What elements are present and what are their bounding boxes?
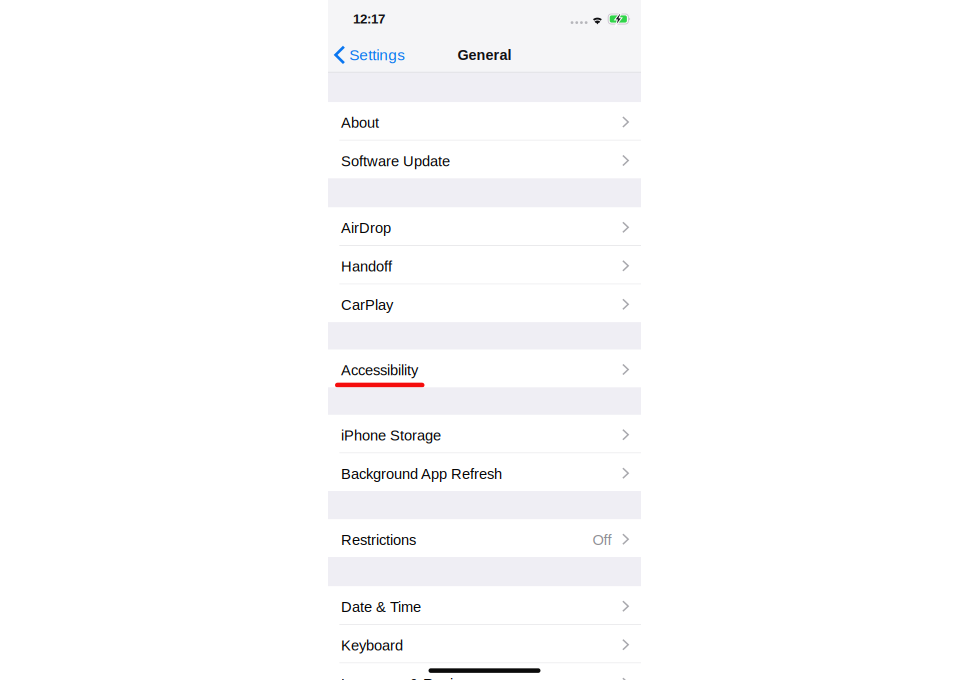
button[interactable]: About [328,102,641,140]
staticText: Language & Region [341,676,469,680]
button[interactable]: Keyboard [328,625,641,662]
button[interactable]: CarPlay [328,284,641,322]
button[interactable]: Handoff [328,246,641,284]
staticText: General [457,47,511,63]
button[interactable]: Language & Region [328,663,641,680]
staticText: Restrictions [341,532,416,548]
button[interactable]: Accessibility [328,350,641,387]
staticText: CarPlay [341,297,393,313]
button[interactable]: iPhone Storage [328,415,641,452]
staticText: Off [593,532,612,548]
button[interactable]: Settings [328,38,413,72]
staticText: Accessibility [341,362,418,378]
button[interactable]: Background App Refresh [328,453,641,491]
button[interactable]: Restrictions [328,519,641,557]
staticText: 12:17 [353,12,385,26]
button[interactable]: Date & Time [328,586,641,624]
button[interactable]: AirDrop [328,207,641,245]
staticText: Software Update [341,153,450,169]
staticText: AirDrop [341,220,391,236]
button[interactable]: Software Update [328,141,641,178]
staticText: Date & Time [341,599,421,615]
staticText: Settings [349,46,405,63]
staticText: Handoff [341,258,392,275]
staticText: Background App Refresh [341,466,502,482]
staticText: iPhone Storage [341,427,441,444]
staticText: About [341,114,379,131]
staticText: Keyboard [341,637,403,654]
